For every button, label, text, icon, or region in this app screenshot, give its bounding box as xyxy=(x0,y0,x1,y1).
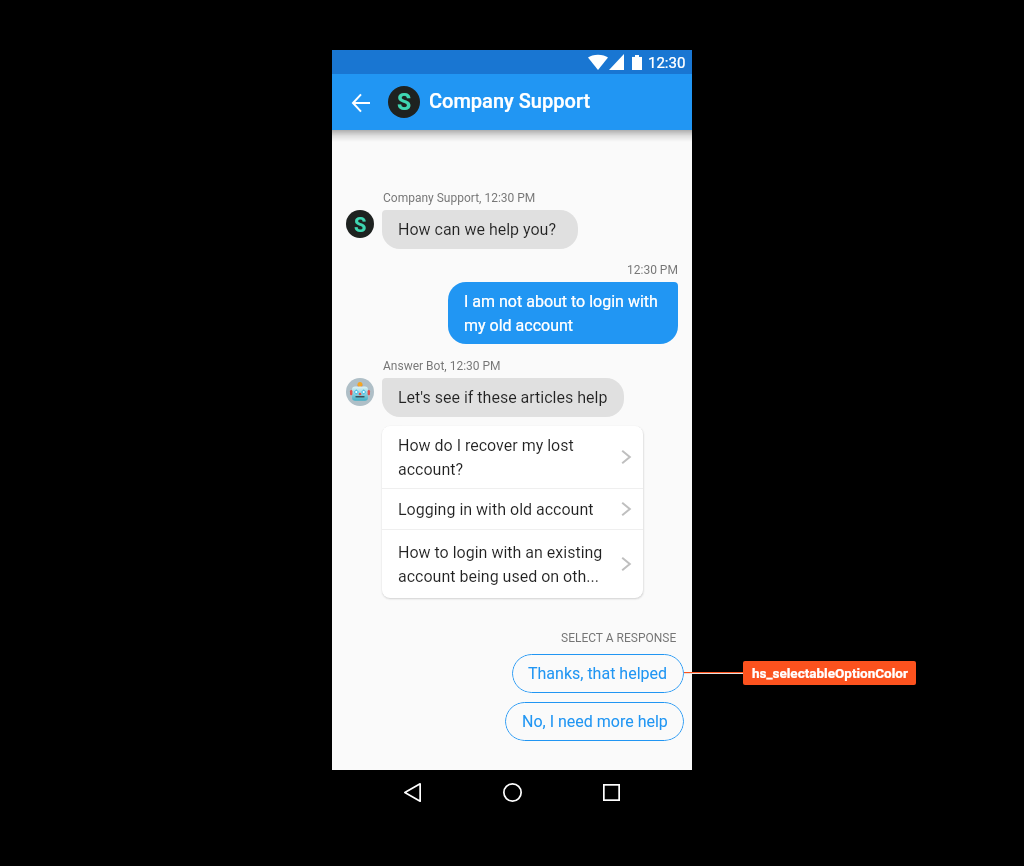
staticText: Answer Bot, 12:30 PM xyxy=(383,359,501,373)
staticText: I am not about to login with my old acco… xyxy=(464,292,664,335)
button[interactable]: I am not about to login with my old acco… xyxy=(448,282,678,344)
button[interactable]: Thanks, that helped xyxy=(512,654,684,693)
staticText: hs_selectableOptionColor xyxy=(752,665,908,681)
button[interactable]: How do I recover my lost account? xyxy=(382,426,643,488)
button[interactable]: Home xyxy=(490,770,534,814)
button[interactable]: Logging in with old account xyxy=(382,489,643,529)
button[interactable]: No, I need more help xyxy=(505,702,684,741)
button[interactable]: Back xyxy=(390,770,434,814)
button[interactable]: How to login with an existing account be… xyxy=(382,530,643,598)
button[interactable]: Navigate back xyxy=(339,81,383,125)
staticText: How to login with an existing account be… xyxy=(398,543,615,586)
staticText: SELECT A RESPONSE xyxy=(561,631,677,645)
staticText: How can we help you? xyxy=(398,220,556,239)
staticText: 12:30 xyxy=(648,54,686,72)
button[interactable]: Let's see if these articles help xyxy=(382,378,624,417)
staticText: S xyxy=(354,213,367,236)
staticText: Company Support, 12:30 PM xyxy=(383,191,536,205)
staticText: Thanks, that helped xyxy=(528,664,668,683)
button[interactable]: Recent apps xyxy=(589,770,633,814)
button[interactable]: How can we help you? xyxy=(382,210,578,249)
staticText: 12:30 PM xyxy=(627,263,678,277)
staticText: S xyxy=(397,89,412,116)
staticText: No, I need more help xyxy=(522,712,668,731)
staticText: Company Support xyxy=(429,89,591,112)
staticText: Let's see if these articles help xyxy=(398,388,608,407)
staticText: Logging in with old account xyxy=(398,500,615,519)
staticText: How do I recover my lost account? xyxy=(398,436,615,479)
